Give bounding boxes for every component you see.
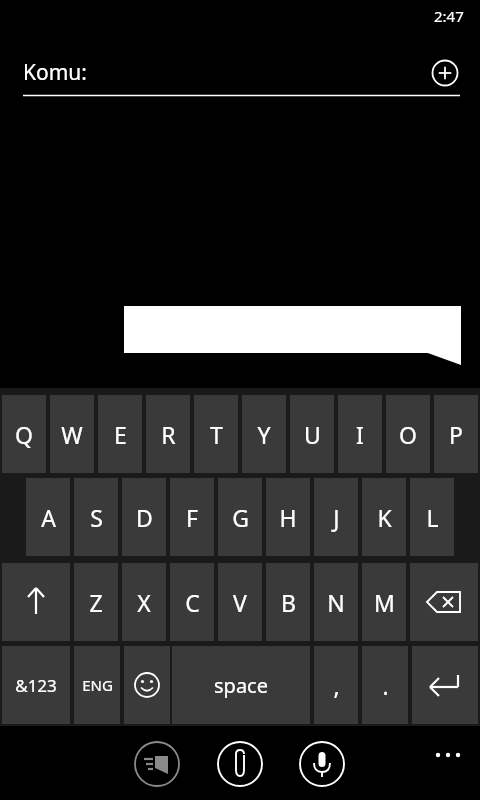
button[interactable]: C <box>170 563 214 641</box>
button[interactable]: J <box>314 478 358 556</box>
staticText: R <box>161 419 176 450</box>
staticText: L <box>426 502 439 533</box>
button[interactable]: &123 <box>2 646 70 724</box>
staticText: N <box>327 587 345 618</box>
button[interactable]: Voice message <box>296 738 348 790</box>
staticText: Komu: <box>23 58 87 87</box>
button[interactable]: R <box>146 395 190 473</box>
button[interactable]: H <box>266 478 310 556</box>
staticText: I <box>356 419 364 450</box>
button[interactable]: . <box>362 646 408 724</box>
staticText: C <box>185 587 200 618</box>
button[interactable]: ENG <box>74 646 120 724</box>
button[interactable]: More options <box>415 730 480 780</box>
staticText: , <box>333 670 340 701</box>
button[interactable]: K <box>362 478 406 556</box>
staticText: . <box>382 670 389 701</box>
staticText: U <box>304 419 321 450</box>
button[interactable]: Shift <box>2 563 70 641</box>
staticText: J <box>333 502 340 533</box>
staticText: V <box>233 587 247 618</box>
button[interactable]: Q <box>2 395 46 473</box>
button[interactable]: G <box>218 478 262 556</box>
button[interactable]: W <box>50 395 94 473</box>
button[interactable]: Messages <box>131 738 183 790</box>
staticText: T <box>210 419 223 450</box>
button[interactable] <box>120 300 465 370</box>
staticText: E <box>114 419 127 450</box>
button[interactable]: Komu: <box>0 48 420 98</box>
button[interactable]: Y <box>242 395 286 473</box>
staticText: Z <box>89 587 103 618</box>
button[interactable]: Emoji <box>124 646 170 724</box>
button[interactable]: Enter <box>412 646 478 724</box>
button[interactable]: F <box>170 478 214 556</box>
staticText: K <box>377 502 392 533</box>
button[interactable]: M <box>362 563 406 641</box>
staticText: P <box>449 419 463 450</box>
staticText: X <box>137 587 151 618</box>
button[interactable]: L <box>410 478 454 556</box>
staticText: S <box>90 502 103 533</box>
staticText: space <box>214 672 268 699</box>
staticText: M <box>374 587 395 618</box>
button[interactable]: Backspace <box>410 563 478 641</box>
button[interactable]: space <box>172 646 310 724</box>
button[interactable]: N <box>314 563 358 641</box>
button[interactable]: V <box>218 563 262 641</box>
staticText: D <box>136 502 153 533</box>
staticText: A <box>41 502 56 533</box>
staticText: W <box>61 419 83 450</box>
button[interactable]: S <box>74 478 118 556</box>
button[interactable]: P <box>434 395 478 473</box>
staticText: ENG <box>82 675 113 695</box>
button[interactable]: O <box>386 395 430 473</box>
button[interactable]: Add recipient <box>425 53 465 93</box>
staticText: G <box>232 502 249 533</box>
button[interactable]: I <box>338 395 382 473</box>
button[interactable]: Attach <box>214 738 266 790</box>
staticText: H <box>279 502 297 533</box>
button[interactable]: B <box>266 563 310 641</box>
button[interactable]: U <box>290 395 334 473</box>
staticText: F <box>186 502 198 533</box>
button[interactable]: A <box>26 478 70 556</box>
button[interactable]: Z <box>74 563 118 641</box>
staticText: 2:47 <box>434 6 464 26</box>
staticText: B <box>281 587 296 618</box>
staticText: O <box>399 419 417 450</box>
staticText: Y <box>257 419 271 450</box>
button[interactable]: D <box>122 478 166 556</box>
staticText: &123 <box>15 674 57 697</box>
button[interactable]: , <box>314 646 358 724</box>
button[interactable]: T <box>194 395 238 473</box>
staticText: Q <box>15 419 33 450</box>
button[interactable]: E <box>98 395 142 473</box>
button[interactable]: X <box>122 563 166 641</box>
